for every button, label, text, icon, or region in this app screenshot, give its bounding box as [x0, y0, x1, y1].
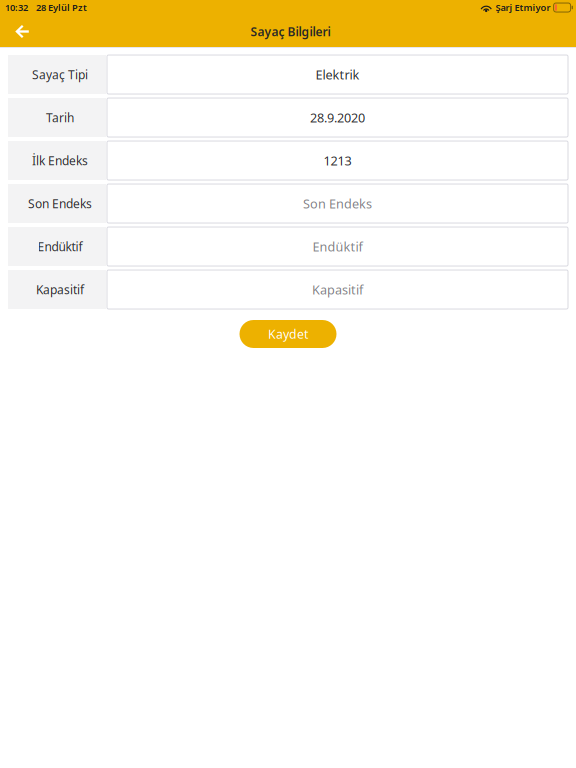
- button[interactable]: Kapasitif: [107, 270, 568, 309]
- staticText: Endüktif: [312, 238, 362, 255]
- staticText: Sayaç Bilgileri: [250, 23, 330, 40]
- staticText: Son Endeks: [28, 195, 92, 212]
- staticText: 28.9.2020: [310, 109, 365, 126]
- button[interactable]: 1213: [107, 141, 568, 180]
- staticText: Endüktif: [37, 238, 82, 255]
- staticText: 10:32: [5, 1, 28, 14]
- staticText: Şarj Etmiyor: [496, 1, 551, 14]
- staticText: Son Endeks: [303, 195, 372, 212]
- staticText: 28 Eylül Pzt: [36, 1, 87, 14]
- staticText: Kapasitif: [36, 281, 84, 298]
- staticText: Elektrik: [315, 66, 359, 83]
- button[interactable]: Elektrik: [107, 55, 568, 94]
- staticText: İlk Endeks: [32, 152, 88, 169]
- button[interactable]: Back: [0, 20, 44, 47]
- button[interactable]: 28.9.2020: [107, 98, 568, 137]
- staticText: Kapasitif: [312, 281, 363, 298]
- button[interactable]: Kaydet: [239, 320, 336, 348]
- staticText: Tarih: [46, 109, 74, 126]
- staticText: Sayaç Tipi: [32, 66, 88, 83]
- button[interactable]: Son Endeks: [107, 184, 568, 223]
- button[interactable]: Endüktif: [107, 227, 568, 266]
- staticText: 1213: [323, 152, 351, 169]
- staticText: Kaydet: [268, 326, 308, 342]
